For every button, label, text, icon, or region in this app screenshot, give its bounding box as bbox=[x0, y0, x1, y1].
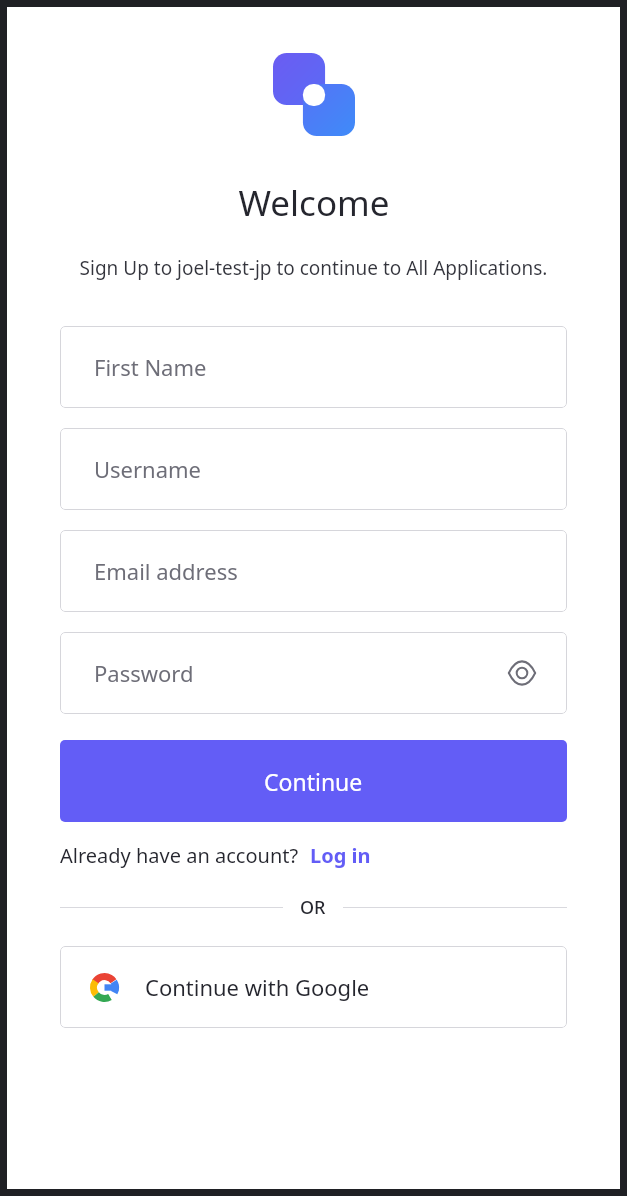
staticText: Continue bbox=[264, 766, 363, 797]
button[interactable]: Password bbox=[60, 632, 567, 714]
button[interactable]: First Name bbox=[60, 326, 567, 408]
staticText: Username bbox=[94, 454, 539, 484]
staticText: OR bbox=[300, 895, 326, 920]
staticText: Welcome bbox=[238, 179, 390, 227]
button[interactable]: Continue with Google bbox=[60, 946, 567, 1028]
staticText: Password bbox=[94, 658, 505, 688]
staticText: Email address bbox=[94, 556, 539, 586]
button[interactable]: Log in bbox=[310, 842, 371, 869]
staticText: First Name bbox=[94, 352, 539, 382]
button[interactable]: Username bbox=[60, 428, 567, 510]
staticText: Continue with Google bbox=[145, 972, 370, 1002]
button[interactable]: Show password bbox=[505, 656, 539, 690]
staticText: Already have an account? bbox=[60, 842, 299, 869]
button[interactable]: Email address bbox=[60, 530, 567, 612]
staticText: Sign Up to joel-test-jp to continue to A… bbox=[59, 255, 568, 281]
staticText: Log in bbox=[310, 842, 371, 869]
button[interactable]: Continue bbox=[60, 740, 567, 822]
